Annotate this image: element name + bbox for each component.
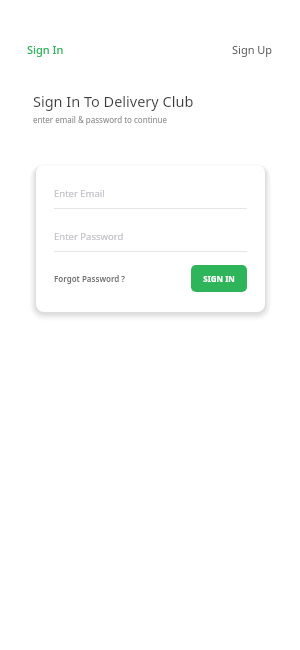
staticText: Enter Email (54, 187, 105, 200)
staticText: Enter Password (54, 230, 124, 243)
button[interactable]: Sign In (27, 40, 64, 59)
staticText: SIGN IN (203, 273, 235, 284)
staticText: enter email & password to continue (33, 114, 167, 125)
button[interactable]: Sign Up (232, 40, 273, 59)
staticText: Forgot Password ? (54, 273, 126, 284)
button[interactable]: Forgot Password ? (54, 270, 126, 287)
button[interactable]: Enter Email (36, 187, 265, 209)
button[interactable]: Enter Password (36, 230, 265, 252)
staticText: Sign In To Delivery Club (33, 91, 194, 111)
button[interactable]: SIGN IN (191, 265, 247, 292)
staticText: Sign Up (232, 42, 273, 57)
staticText: Sign In (27, 42, 64, 57)
